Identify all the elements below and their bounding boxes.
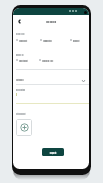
staticText: Common Area: [42, 60, 58, 62]
staticText: Submit: [42, 152, 64, 155]
button[interactable]: Apartment: [16, 59, 35, 61]
button[interactable]: Add attachment: [16, 119, 32, 136]
staticText: HELPDESK: [31, 20, 71, 23]
button[interactable]: Request: [70, 39, 89, 41]
staticText: Complaint: [19, 40, 35, 42]
staticText: HELPDESK: [31, 21, 71, 24]
button[interactable]: Suggestion: [40, 39, 59, 41]
staticText: Issue Type: [16, 33, 36, 35]
staticText: Category: [16, 78, 36, 80]
staticText: Apartment: [19, 59, 35, 61]
staticText: Raised To: [16, 53, 36, 55]
button[interactable]: Complaint: [16, 39, 35, 41]
staticText: Request: [73, 39, 89, 41]
staticText: Category: [16, 79, 36, 81]
staticText: Request: [73, 40, 89, 42]
staticText: Raised To: [16, 54, 36, 56]
staticText: Issue Type: [16, 32, 36, 34]
button[interactable]: Common Area: [39, 59, 58, 61]
staticText: Description: [16, 89, 36, 91]
staticText: Apartment: [19, 60, 35, 62]
staticText: Submit: [42, 151, 64, 154]
button[interactable]: Submit: [42, 148, 64, 156]
staticText: Suggestion: [43, 40, 59, 42]
staticText: Complaint: [19, 39, 35, 41]
staticText: Suggestion: [43, 39, 59, 41]
staticText: Attachment: [16, 113, 36, 115]
button[interactable]: Back: [15, 17, 24, 26]
staticText: Description: [16, 88, 36, 90]
staticText: Common Area: [42, 59, 58, 61]
staticText: Attachment: [16, 112, 36, 114]
